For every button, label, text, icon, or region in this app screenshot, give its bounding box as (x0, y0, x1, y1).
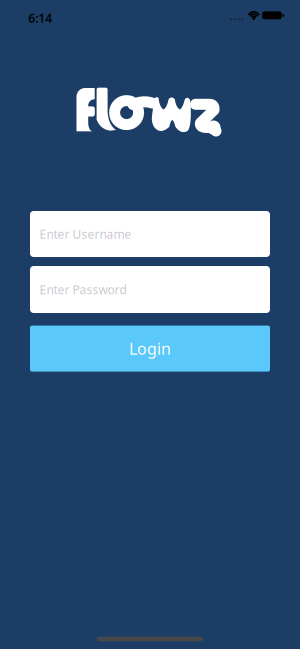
button[interactable]: Login (30, 326, 270, 372)
staticText: Login (129, 338, 171, 359)
staticText: 6:14 (28, 10, 52, 26)
button[interactable]: Enter Username (30, 211, 270, 257)
button[interactable]: Enter Password (30, 266, 270, 313)
staticText: Enter Username (39, 226, 131, 242)
staticText: Enter Password (39, 281, 126, 297)
